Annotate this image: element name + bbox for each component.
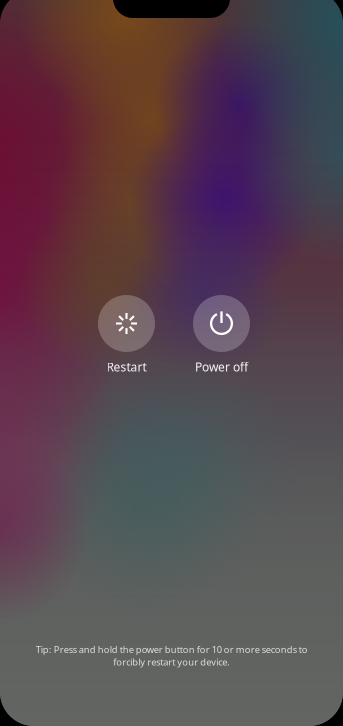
staticText: Restart [106,359,146,375]
button[interactable]: Restart [79,295,174,375]
staticText: Tip: Press and hold the power button for… [35,643,307,668]
staticText: Power off [195,359,248,375]
button[interactable]: Power off [174,295,269,375]
